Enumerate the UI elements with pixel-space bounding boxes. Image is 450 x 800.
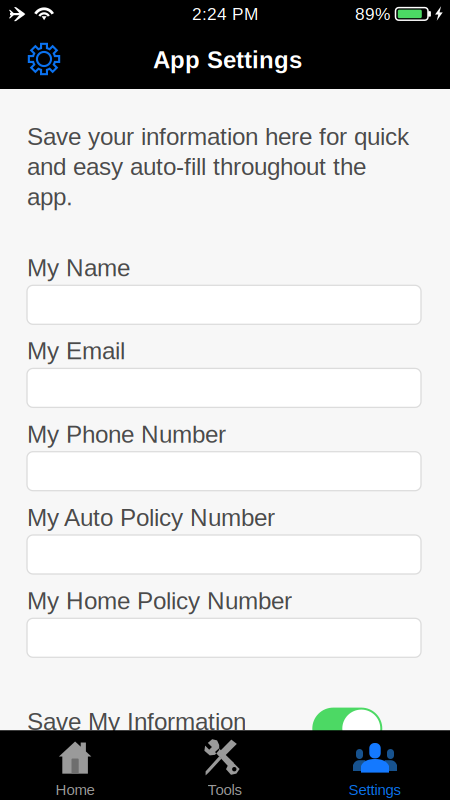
staticText: Tools xyxy=(207,781,242,798)
staticText: My Phone Number xyxy=(27,421,226,448)
staticText: 2:24 PM xyxy=(192,4,258,24)
staticText: 89% xyxy=(355,4,390,24)
staticText: Settings xyxy=(348,781,401,798)
staticText: Save My Information xyxy=(27,708,246,735)
staticText: Save your information here for quick and… xyxy=(27,123,409,210)
button[interactable]: Home xyxy=(0,730,150,800)
staticText: My Home Policy Number xyxy=(27,587,292,614)
staticText: My Email xyxy=(27,337,125,364)
button[interactable]: Tools xyxy=(150,730,300,800)
staticText: My Auto Policy Number xyxy=(27,504,275,531)
staticText: App Settings xyxy=(153,47,302,73)
button[interactable]: Settings xyxy=(18,33,70,85)
button[interactable]: Save My Information xyxy=(27,704,421,750)
button[interactable]: Settings xyxy=(300,730,450,800)
staticText: Home xyxy=(55,781,94,798)
staticText: My Name xyxy=(27,254,130,281)
